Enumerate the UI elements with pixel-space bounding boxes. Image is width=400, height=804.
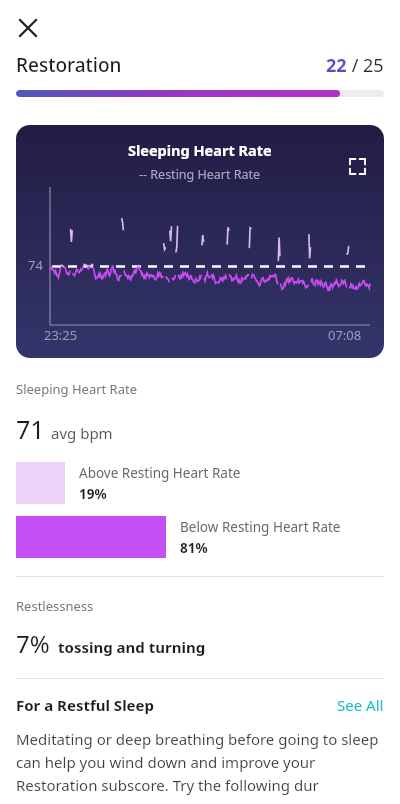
staticText: Restoration (16, 52, 122, 78)
staticText: 22 (326, 53, 347, 78)
button[interactable]: Sleeping Heart Rate (16, 125, 384, 358)
staticText: tossing and turning (58, 637, 206, 657)
button[interactable]: Close (8, 8, 48, 48)
staticText: / 25 (347, 53, 384, 78)
staticText: 7% (16, 627, 50, 660)
staticText: avg bpm (51, 423, 113, 443)
button[interactable]: Expand chart (344, 153, 370, 179)
staticText: -- Resting Heart Rate (139, 166, 261, 183)
staticText: Sleeping Heart Rate (128, 140, 272, 160)
staticText: See All (337, 695, 384, 715)
staticText: 23:25 (44, 326, 78, 344)
staticText: For a Restful Sleep (16, 695, 154, 715)
staticText: Sleeping Heart Rate (16, 380, 138, 398)
staticText: Restlessness (16, 597, 94, 615)
staticText: 81% (180, 539, 208, 557)
staticText: Below Resting Heart Rate (180, 518, 341, 536)
staticText: 71 (16, 412, 45, 446)
button[interactable]: See All (337, 695, 384, 715)
staticText: 74 (28, 256, 43, 274)
staticText: Meditating or deep breathing before goin… (16, 729, 384, 795)
staticText: 07:08 (328, 326, 362, 344)
staticText: 19% (79, 485, 107, 503)
staticText: Above Resting Heart Rate (79, 464, 241, 482)
